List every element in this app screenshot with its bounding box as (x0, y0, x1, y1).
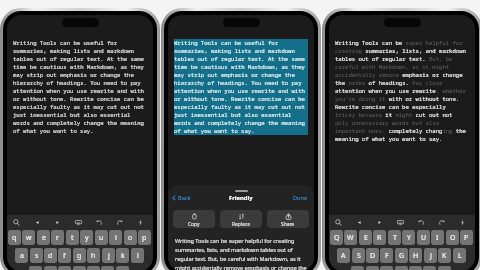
button[interactable]: i (109, 230, 122, 245)
staticText: y (85, 233, 89, 243)
button[interactable]: a (15, 248, 28, 263)
button[interactable]: Move left (32, 217, 43, 228)
button[interactable]: A (337, 248, 350, 263)
button[interactable]: K (438, 248, 451, 263)
staticText: S (357, 251, 361, 261)
button[interactable]: l (131, 248, 144, 263)
button[interactable]: Move right (374, 217, 385, 228)
button[interactable]: g (73, 248, 86, 263)
staticText: A (341, 251, 346, 261)
button[interactable]: Search (333, 217, 344, 228)
button[interactable]: d (44, 248, 57, 263)
staticText: J (430, 251, 432, 261)
button[interactable]: t (66, 230, 79, 245)
button[interactable]: q (8, 230, 21, 245)
button[interactable]: R (373, 230, 386, 245)
button[interactable]: Undo (416, 217, 427, 228)
button[interactable]: f (58, 248, 71, 263)
button[interactable]: I (431, 230, 444, 245)
staticText: L (458, 251, 462, 261)
button[interactable]: T (388, 230, 401, 245)
button[interactable]: Shortcuts (135, 217, 146, 228)
button[interactable]: Replace (220, 210, 262, 228)
button[interactable]: G (395, 248, 408, 263)
button[interactable]: C (380, 266, 393, 270)
button[interactable]: M (438, 266, 451, 270)
button[interactable]: N (423, 266, 436, 270)
button[interactable]: b (87, 266, 100, 270)
button[interactable]: P (460, 230, 473, 245)
staticText: T (393, 233, 397, 243)
button[interactable]: W (344, 230, 357, 245)
staticText: o (128, 233, 133, 243)
button[interactable]: Keyboard (395, 217, 406, 228)
button[interactable]: o (124, 230, 137, 245)
staticText: t (71, 233, 74, 243)
button[interactable]: B (409, 266, 422, 270)
button[interactable]: e (37, 230, 50, 245)
button[interactable]: v (73, 266, 86, 270)
button[interactable]: x (44, 266, 57, 270)
button[interactable]: H (409, 248, 422, 263)
staticText: Back (178, 194, 191, 202)
staticText: r (56, 233, 59, 243)
staticText: q (12, 233, 17, 243)
button[interactable]: J (424, 248, 437, 263)
button[interactable]: s (30, 248, 43, 263)
staticText: u (99, 233, 104, 243)
button[interactable]: Share (267, 210, 309, 228)
button[interactable]: Move right (52, 217, 63, 228)
button[interactable]: Shortcuts (457, 217, 468, 228)
button[interactable]: c (58, 266, 71, 270)
staticText: H (413, 251, 419, 261)
button[interactable]: Search (11, 217, 22, 228)
staticText: I (436, 233, 439, 243)
button[interactable]: X (366, 266, 379, 270)
staticText: w (26, 233, 32, 243)
button[interactable]: u (95, 230, 108, 245)
button[interactable]: Move left (354, 217, 365, 228)
button[interactable]: U (417, 230, 430, 245)
button[interactable]: y (80, 230, 93, 245)
staticText: e (42, 233, 46, 243)
button[interactable]: L (453, 248, 466, 263)
button[interactable]: r (51, 230, 64, 245)
staticText: P (464, 233, 469, 243)
button[interactable]: Back (171, 194, 191, 202)
button[interactable]: S (352, 248, 365, 263)
button[interactable]: D (366, 248, 379, 263)
button[interactable]: w (22, 230, 35, 245)
button[interactable]: Redo (114, 217, 125, 228)
button[interactable]: Redo (436, 217, 447, 228)
button[interactable]: Keyboard (73, 217, 84, 228)
staticText: U (421, 233, 427, 243)
staticText: i (115, 233, 117, 243)
staticText: Q (334, 233, 340, 243)
button[interactable]: p (138, 230, 151, 245)
staticText: W (347, 233, 354, 243)
button[interactable]: Copy (173, 210, 215, 228)
button[interactable]: h (87, 248, 100, 263)
button[interactable]: m (116, 266, 129, 270)
button[interactable]: Z (351, 266, 364, 270)
button[interactable]: j (102, 248, 115, 263)
button[interactable]: O (446, 230, 459, 245)
button[interactable]: Y (402, 230, 415, 245)
button[interactable]: Done (293, 194, 308, 202)
button[interactable]: Undo (94, 217, 105, 228)
button[interactable]: F (380, 248, 393, 263)
staticText: f (63, 251, 66, 261)
button[interactable]: Q (330, 230, 343, 245)
button[interactable]: k (116, 248, 129, 263)
button[interactable]: V (395, 266, 408, 270)
button[interactable]: z (29, 266, 42, 270)
button[interactable]: n (101, 266, 114, 270)
button[interactable]: E (359, 230, 372, 245)
staticText: Share (281, 221, 295, 228)
